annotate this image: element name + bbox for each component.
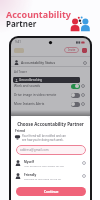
button[interactable]: Friendly (15, 171, 86, 181)
staticText: Continue (44, 190, 59, 194)
staticText: Your friend will be notified and can (22, 134, 66, 138)
button[interactable] (14, 48, 24, 53)
staticText: Your account is your activity for you (24, 164, 64, 167)
staticText: Choose Accountability Partner (11, 121, 90, 127)
staticText: Friend (15, 129, 26, 133)
staticText: Partner (6, 18, 37, 29)
button[interactable]: Groundbreaking (15, 77, 78, 83)
button[interactable]: Accountability Status (14, 58, 87, 67)
button[interactable]: Invite (64, 47, 79, 53)
button[interactable]: Work and sounds (14, 83, 85, 89)
staticText: More Instants Alerts (14, 102, 45, 106)
staticText: 9:41 (15, 40, 21, 44)
button[interactable]: Notifications (82, 48, 87, 53)
staticText: Drive image in video remote (14, 93, 57, 97)
staticText: Friendly (24, 173, 37, 177)
staticText: Groundbreaking (19, 78, 43, 82)
button[interactable]: Myself (15, 158, 86, 168)
staticText: Welcome to this friend on the list (24, 177, 62, 180)
staticText: address@gmail.com (20, 148, 49, 152)
staticText: Ad Tower (14, 70, 28, 74)
button[interactable]: address@gmail.com (16, 145, 86, 155)
staticText: Accountability Status (21, 60, 56, 65)
staticText: see how you're doing each week. (22, 138, 64, 142)
staticText: Invite (68, 48, 76, 52)
button[interactable]: Continue (16, 187, 86, 196)
staticText: Accountability (6, 8, 71, 20)
button[interactable]: Drive image in video remote (14, 92, 85, 98)
staticText: Work and sounds (14, 84, 41, 88)
other: Two partners (70, 17, 92, 31)
staticText: Myself (24, 160, 34, 164)
button[interactable]: More Instants Alerts (14, 101, 85, 107)
